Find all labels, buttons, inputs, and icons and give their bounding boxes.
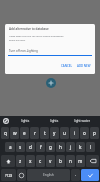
button[interactable]: p [90, 127, 99, 139]
button[interactable]: u [60, 127, 69, 139]
button[interactable]: j [66, 142, 75, 152]
staticText: q [4, 130, 7, 136]
button[interactable]: lights [40, 116, 68, 126]
button[interactable]: h [56, 142, 65, 152]
staticText: c [39, 158, 42, 164]
staticText: Name given that you can use to lookup in… [9, 35, 64, 42]
staticText: ?123 [5, 173, 13, 178]
staticText: Add alternative to database [9, 27, 49, 31]
staticText: p [93, 130, 96, 136]
staticText: a [9, 144, 12, 150]
button[interactable]: m [76, 155, 85, 167]
button[interactable]: w [10, 127, 19, 139]
button[interactable]: c [36, 155, 45, 167]
staticText: ADD NEW [77, 64, 91, 68]
button[interactable]: s [16, 142, 25, 152]
button[interactable]: r [30, 127, 39, 139]
button[interactable]: Backspace [86, 155, 99, 167]
button[interactable]: k [76, 142, 85, 152]
staticText: i [74, 130, 76, 136]
staticText: v [49, 158, 52, 164]
button[interactable]: l [86, 142, 95, 152]
staticText: y [53, 130, 56, 136]
button[interactable]: x [26, 155, 35, 167]
staticText: k [79, 144, 82, 150]
staticText: o [83, 130, 86, 136]
button[interactable]: f [36, 142, 45, 152]
button[interactable]: Add [46, 78, 56, 88]
staticText: r [34, 130, 36, 136]
staticText: f [40, 144, 42, 150]
button[interactable]: . [71, 169, 80, 181]
staticText: t [44, 130, 46, 136]
staticText: n [69, 158, 72, 164]
button[interactable]: light water [68, 116, 96, 126]
button[interactable]: e [20, 127, 29, 139]
button[interactable]: t [40, 127, 49, 139]
staticText: h [59, 144, 62, 150]
staticText: . [75, 172, 77, 178]
staticText: z [19, 158, 22, 164]
button[interactable]: Shift [1, 155, 15, 167]
button[interactable]: Keyboard settings [0, 116, 11, 126]
button[interactable]: g [46, 142, 55, 152]
staticText: Turn off non-Lighting [9, 49, 38, 53]
button[interactable]: Space [27, 169, 70, 181]
button[interactable]: a [5, 142, 15, 152]
staticText: b [59, 158, 62, 164]
button[interactable]: CANCEL [59, 62, 74, 70]
staticText: s [19, 144, 22, 150]
button[interactable]: q [1, 127, 9, 139]
button[interactable]: i [70, 127, 79, 139]
staticText: lights [21, 119, 30, 123]
button[interactable]: b [56, 155, 65, 167]
button[interactable]: n [66, 155, 75, 167]
staticText: light water [74, 119, 91, 123]
button[interactable]: d [26, 142, 35, 152]
button[interactable]: Enter [81, 169, 99, 181]
button[interactable]: y [50, 127, 59, 139]
staticText: u [63, 130, 66, 136]
staticText: x [29, 158, 32, 164]
button[interactable]: ?123 [1, 169, 16, 181]
staticText: w [13, 130, 17, 136]
staticText: lights [50, 119, 59, 123]
staticText: m [78, 158, 83, 164]
button[interactable]: v [46, 155, 55, 167]
staticText: g [49, 144, 52, 150]
staticText: l [90, 144, 92, 150]
staticText: English [43, 173, 54, 177]
button[interactable]: z [16, 155, 25, 167]
button[interactable]: Emoji [17, 169, 26, 181]
staticText: CANCEL [61, 64, 72, 68]
button[interactable]: ADD NEW [75, 62, 93, 70]
staticText: e [23, 130, 26, 136]
staticText: j [70, 144, 72, 150]
staticText: d [29, 144, 32, 150]
button[interactable]: lights [11, 116, 40, 126]
button[interactable]: o [80, 127, 89, 139]
